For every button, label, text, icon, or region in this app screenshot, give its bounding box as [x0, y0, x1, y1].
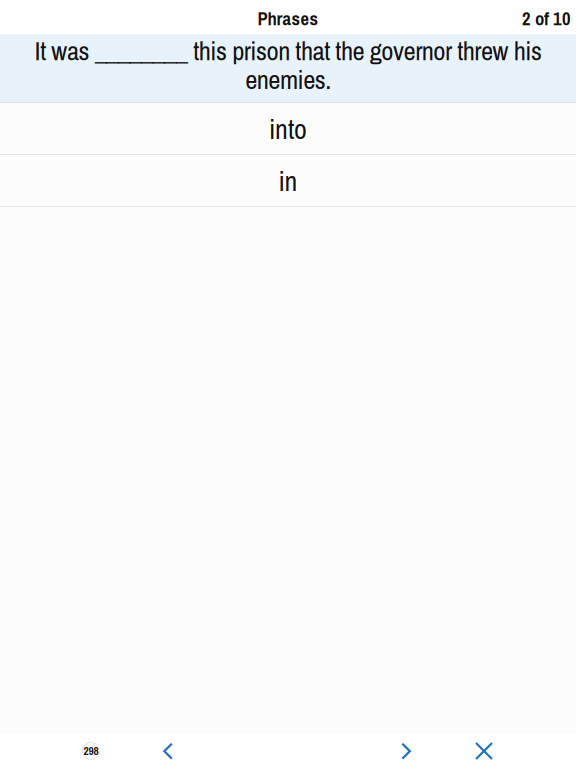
button[interactable]: in — [0, 155, 576, 207]
button[interactable]: Cards remaining — [68, 734, 114, 768]
staticText: Phrases — [257, 6, 318, 31]
button[interactable]: Previous — [146, 734, 190, 768]
button[interactable]: Close — [462, 734, 506, 768]
staticText: 298 — [83, 743, 98, 759]
button[interactable]: into — [0, 103, 576, 155]
staticText: in — [278, 162, 297, 200]
staticText: It was ________ this prison that the gov… — [34, 33, 542, 97]
staticText: into — [269, 110, 307, 148]
button[interactable]: Next — [384, 734, 428, 768]
staticText: 2 of 10 — [522, 6, 571, 31]
